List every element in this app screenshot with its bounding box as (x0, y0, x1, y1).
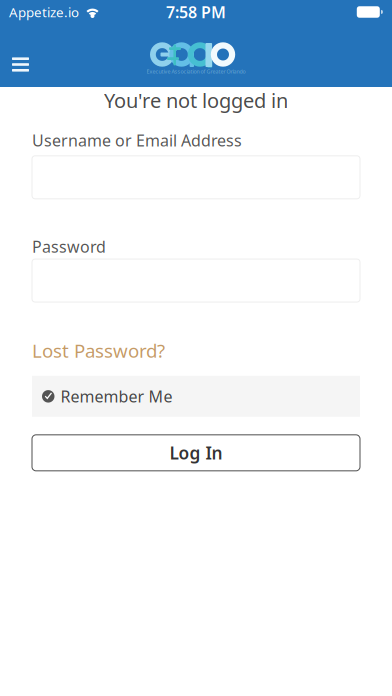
staticText: You're not logged in (104, 87, 288, 114)
staticText: Password (32, 236, 106, 257)
button[interactable]: Log In (32, 435, 360, 471)
staticText: 7:58 PM (166, 1, 226, 23)
staticText: Appetize.io (9, 3, 79, 21)
button[interactable]: Menu (0, 41, 41, 87)
staticText: Remember Me (60, 386, 172, 407)
staticText: Username or Email Address (32, 130, 242, 151)
button[interactable]: Lost Password? (32, 338, 165, 363)
button[interactable]: Remember Me (32, 376, 360, 417)
staticText: Executive Association of Greater Orlando (146, 68, 245, 75)
staticText: Lost Password? (32, 338, 165, 363)
staticText: Log In (169, 441, 222, 464)
